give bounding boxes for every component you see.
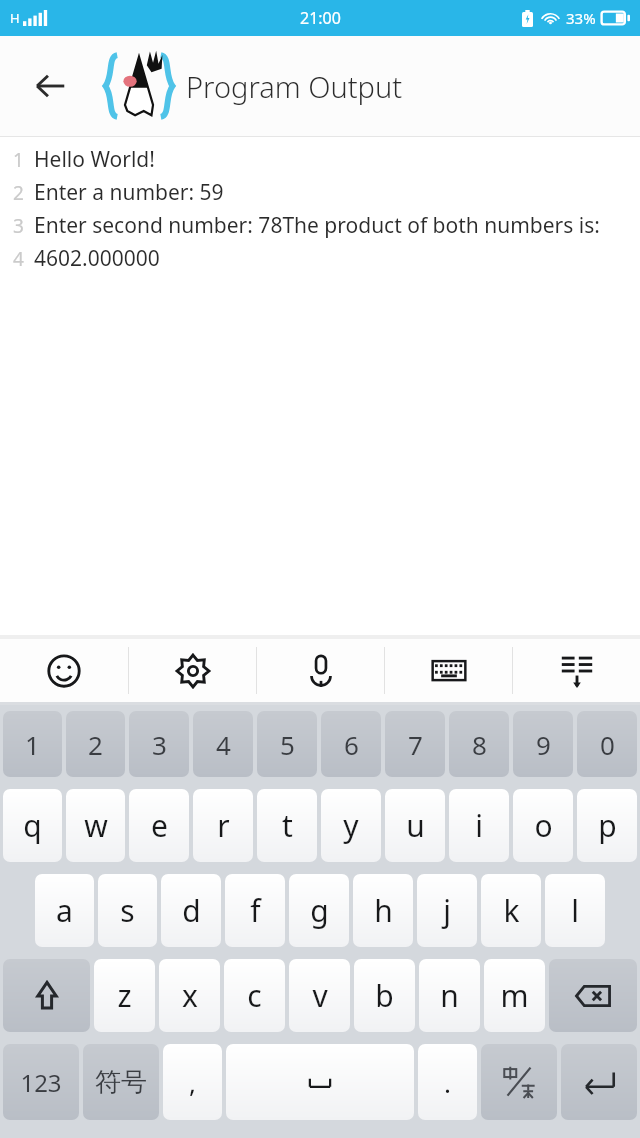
staticText: Enter a number: 59: [34, 178, 640, 207]
button[interactable]: h: [353, 874, 413, 947]
staticText: d: [182, 890, 201, 931]
button[interactable]: g: [289, 874, 349, 947]
button[interactable]: 0: [577, 711, 637, 777]
button[interactable]: Emoji: [0, 639, 128, 702]
staticText: i: [475, 805, 483, 846]
staticText: q: [23, 805, 42, 846]
staticText: 8: [472, 727, 487, 762]
staticText: ,: [189, 1065, 196, 1100]
staticText: s: [120, 890, 135, 931]
staticText: 6: [344, 727, 359, 762]
button[interactable]: v: [289, 959, 350, 1032]
button[interactable]: j: [417, 874, 477, 947]
button[interactable]: 4: [193, 711, 253, 777]
button[interactable]: Backspace: [549, 959, 637, 1032]
staticText: p: [598, 805, 617, 846]
button[interactable]: u: [385, 789, 445, 862]
button[interactable]: x: [159, 959, 220, 1032]
button[interactable]: 6: [321, 711, 381, 777]
button[interactable]: n: [419, 959, 480, 1032]
button[interactable]: Hide keyboard: [513, 639, 640, 702]
button[interactable]: m: [484, 959, 545, 1032]
staticText: g: [310, 890, 329, 931]
button[interactable]: 3: [129, 711, 189, 777]
staticText: 4: [13, 246, 24, 272]
staticText: w: [84, 805, 108, 846]
staticText: m: [500, 975, 529, 1016]
button[interactable]: Back: [0, 36, 100, 136]
staticText: 0: [600, 727, 615, 762]
staticText: 2: [13, 180, 24, 206]
button[interactable]: Voice input: [257, 639, 384, 702]
staticText: 2: [88, 727, 103, 762]
button[interactable]: p: [577, 789, 637, 862]
staticText: e: [151, 805, 168, 846]
staticText: 3: [13, 213, 24, 239]
button[interactable]: w: [66, 789, 125, 862]
staticText: 4: [216, 727, 231, 762]
staticText: c: [247, 975, 262, 1016]
staticText: 33%: [566, 8, 596, 28]
button[interactable]: Shift: [3, 959, 90, 1032]
button[interactable]: Keyboard layout: [385, 639, 512, 702]
button[interactable]: 符号: [83, 1044, 159, 1120]
button[interactable]: d: [161, 874, 221, 947]
button[interactable]: 8: [449, 711, 509, 777]
button[interactable]: q: [3, 789, 62, 862]
button[interactable]: a: [35, 874, 94, 947]
button[interactable]: 9: [513, 711, 573, 777]
staticText: z: [117, 975, 132, 1016]
button[interactable]: Settings: [129, 639, 256, 702]
staticText: 1: [25, 727, 40, 762]
button[interactable]: .: [418, 1044, 477, 1120]
button[interactable]: t: [257, 789, 317, 862]
staticText: 123: [20, 1066, 62, 1099]
staticText: u: [406, 805, 425, 846]
staticText: 21:00: [300, 7, 341, 29]
staticText: Program Output: [186, 67, 403, 106]
button[interactable]: f: [225, 874, 285, 947]
staticText: H: [10, 9, 20, 27]
staticText: k: [503, 890, 520, 931]
staticText: x: [182, 975, 198, 1016]
button[interactable]: ,: [163, 1044, 222, 1120]
button[interactable]: e: [129, 789, 189, 862]
staticText: a: [56, 890, 73, 931]
button[interactable]: 1: [3, 711, 62, 777]
staticText: 3: [152, 727, 167, 762]
staticText: v: [312, 975, 328, 1016]
button[interactable]: i: [449, 789, 509, 862]
staticText: l: [571, 890, 579, 931]
button[interactable]: Switch language: [481, 1044, 557, 1120]
button[interactable]: 123: [3, 1044, 79, 1120]
staticText: r: [217, 805, 230, 846]
button[interactable]: z: [94, 959, 155, 1032]
staticText: Hello World!: [34, 145, 640, 174]
button[interactable]: 5: [257, 711, 317, 777]
button[interactable]: y: [321, 789, 381, 862]
staticText: Enter second number: 78The product of bo…: [34, 211, 640, 240]
button[interactable]: l: [545, 874, 605, 947]
button[interactable]: 2: [66, 711, 125, 777]
button[interactable]: Space: [226, 1044, 414, 1120]
staticText: b: [375, 975, 394, 1016]
staticText: f: [250, 890, 261, 931]
staticText: 1: [13, 147, 24, 173]
staticText: 9: [536, 727, 551, 762]
staticText: 4602.000000: [34, 244, 640, 273]
button[interactable]: 7: [385, 711, 445, 777]
button[interactable]: b: [354, 959, 415, 1032]
staticText: .: [444, 1065, 451, 1100]
button[interactable]: r: [193, 789, 253, 862]
staticText: t: [282, 805, 293, 846]
button[interactable]: s: [98, 874, 157, 947]
button[interactable]: Enter: [561, 1044, 637, 1120]
staticText: j: [443, 890, 451, 931]
button[interactable]: k: [481, 874, 541, 947]
staticText: 符号: [95, 1066, 147, 1099]
button[interactable]: o: [513, 789, 573, 862]
staticText: y: [343, 805, 359, 846]
staticText: h: [374, 890, 393, 931]
staticText: o: [534, 805, 553, 846]
button[interactable]: c: [224, 959, 285, 1032]
